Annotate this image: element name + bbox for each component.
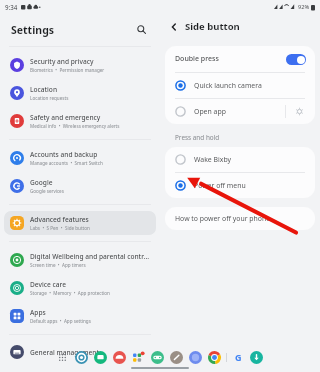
- staticText: Default apps • App settings: [30, 318, 91, 324]
- staticText: Safety and emergency: [30, 113, 101, 122]
- button[interactable]: Samsung Internet: [75, 351, 88, 364]
- button[interactable]: General management: [4, 341, 156, 363]
- button[interactable]: Wake Bixby: [165, 147, 315, 172]
- staticText: Side button: [185, 20, 240, 33]
- staticText: G: [235, 351, 242, 363]
- button[interactable]: Chrome: [208, 351, 221, 364]
- staticText: Accounts and backup: [30, 150, 98, 159]
- staticText: Digital Wellbeing and parental controls: [30, 252, 151, 261]
- staticText: Manage accounts • Smart Switch: [30, 160, 103, 166]
- button[interactable]: Security and privacy: [4, 53, 156, 77]
- button[interactable]: Double press toggle, on: [286, 54, 306, 65]
- button[interactable]: Quick launch camera: [165, 73, 315, 98]
- button[interactable]: App settings: [293, 105, 306, 118]
- staticText: Apps: [30, 308, 46, 317]
- button[interactable]: Accounts and backup: [4, 146, 156, 170]
- button[interactable]: How to power off your phone: [165, 207, 315, 230]
- staticText: Settings: [11, 23, 55, 37]
- staticText: Wake Bixby: [194, 155, 232, 164]
- button[interactable]: Back: [166, 19, 182, 35]
- staticText: 9:34: [5, 3, 18, 11]
- staticText: Advanced features: [30, 215, 89, 224]
- staticText: Google: [30, 178, 53, 187]
- button[interactable]: Google: [232, 351, 244, 363]
- button[interactable]: Settings: [189, 351, 202, 364]
- staticText: Storage • Memory • App protection: [30, 290, 110, 296]
- button[interactable]: Power off menu: [165, 173, 315, 198]
- staticText: Press and hold: [175, 133, 220, 142]
- button[interactable]: Open app: [165, 99, 315, 124]
- staticText: Location: [30, 85, 58, 94]
- button[interactable]: Double press: [165, 46, 315, 72]
- staticText: General management: [30, 348, 99, 357]
- staticText: Labs • S Pen • Side button: [30, 225, 90, 231]
- button[interactable]: Google: [4, 174, 156, 198]
- button[interactable]: Advanced features: [4, 211, 156, 235]
- staticText: Screen time • App timers: [30, 262, 86, 268]
- staticText: Google services: [30, 188, 64, 194]
- button[interactable]: Game Launcher: [151, 351, 164, 364]
- staticText: How to power off your phone: [175, 214, 271, 223]
- staticText: 92%: [298, 3, 310, 11]
- button[interactable]: Phone: [113, 351, 126, 364]
- button[interactable]: Gallery: [170, 351, 183, 364]
- staticText: Biometrics • Permission manager: [30, 67, 105, 73]
- staticText: Double press: [175, 54, 219, 64]
- staticText: Open app: [194, 107, 226, 116]
- staticText: Device care: [30, 280, 66, 289]
- staticText: Location requests: [30, 95, 69, 101]
- button[interactable]: Messages: [94, 351, 107, 364]
- button[interactable]: Device care: [4, 276, 156, 300]
- button[interactable]: Apps: [57, 352, 68, 363]
- button[interactable]: Search settings: [133, 21, 150, 38]
- button[interactable]: Apps: [4, 304, 156, 328]
- button[interactable]: Safety and emergency: [4, 109, 156, 133]
- button[interactable]: Digital Wellbeing and parental controls: [4, 248, 156, 272]
- staticText: Medical info • Wireless emergency alerts: [30, 123, 120, 129]
- staticText: Power off menu: [194, 181, 246, 190]
- staticText: Security and privacy: [30, 57, 94, 66]
- staticText: Quick launch camera: [194, 81, 262, 90]
- button[interactable]: My Files: [250, 351, 263, 364]
- button[interactable]: Location: [4, 81, 156, 105]
- button[interactable]: Play Store: [132, 351, 145, 364]
